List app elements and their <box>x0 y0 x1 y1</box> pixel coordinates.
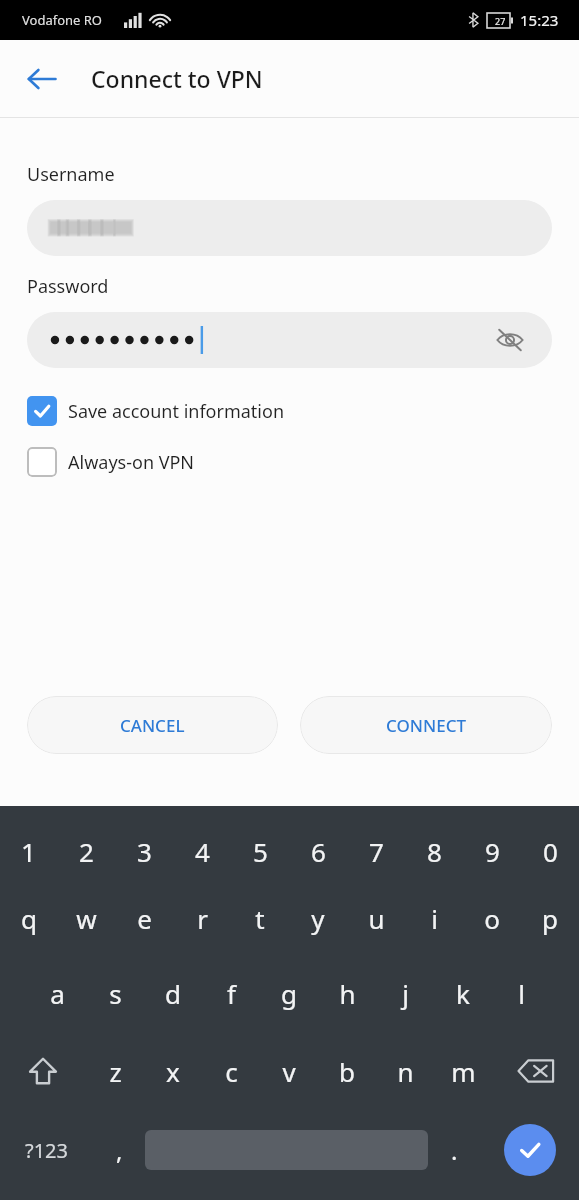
staticText: o <box>484 901 500 936</box>
button[interactable]: p <box>521 882 579 954</box>
button[interactable]: l <box>492 954 550 1032</box>
staticText: 9 <box>485 834 500 869</box>
button[interactable]: r <box>173 882 231 954</box>
button[interactable]: n <box>376 1032 434 1110</box>
staticText: c <box>225 1054 238 1089</box>
staticText: a <box>50 976 65 1011</box>
staticText: f <box>227 976 236 1011</box>
button[interactable]: o <box>463 882 521 954</box>
staticText: 15:23 <box>520 10 559 30</box>
button[interactable]: c <box>202 1032 260 1110</box>
staticText: z <box>109 1054 122 1089</box>
button[interactable]: 3 <box>115 820 173 882</box>
button[interactable]: i <box>405 882 463 954</box>
staticText: CONNECT <box>386 714 466 737</box>
staticText: 27 <box>495 15 506 27</box>
staticText: 4 <box>195 834 210 869</box>
button[interactable]: 7 <box>347 820 405 882</box>
button[interactable]: CANCEL <box>27 696 278 754</box>
staticText: 1 <box>21 834 36 869</box>
staticText: w <box>76 901 97 936</box>
button[interactable]: q <box>0 882 57 954</box>
button[interactable]: 0 <box>521 820 579 882</box>
button[interactable]: Show password <box>488 318 532 362</box>
button[interactable]: g <box>260 954 318 1032</box>
button[interactable]: Enter <box>504 1124 556 1176</box>
button[interactable]: h <box>318 954 376 1032</box>
staticText: i <box>431 901 438 936</box>
button[interactable]: 5 <box>231 820 289 882</box>
button[interactable]: CONNECT <box>300 696 552 754</box>
button[interactable] <box>27 200 552 256</box>
button[interactable]: 8 <box>405 820 463 882</box>
staticText: x <box>166 1054 180 1089</box>
button[interactable]: v <box>260 1032 318 1110</box>
button[interactable]: k <box>434 954 492 1032</box>
staticText: 5 <box>253 834 268 869</box>
button[interactable]: Always-on VPN <box>27 441 552 483</box>
button[interactable]: m <box>434 1032 492 1110</box>
staticText: 0 <box>543 834 558 869</box>
button[interactable]: j <box>376 954 434 1032</box>
staticText: s <box>109 976 122 1011</box>
button[interactable]: s <box>86 954 144 1032</box>
button[interactable]: x <box>144 1032 202 1110</box>
staticText: n <box>397 1054 414 1089</box>
button[interactable]: b <box>318 1032 376 1110</box>
staticText: Save account information <box>68 399 285 424</box>
staticText: k <box>456 976 470 1011</box>
button[interactable]: t <box>231 882 289 954</box>
staticText: p <box>542 901 558 936</box>
button[interactable]: a <box>28 954 86 1032</box>
staticText: b <box>339 1054 355 1089</box>
staticText: Connect to VPN <box>91 63 263 94</box>
staticText: Always-on VPN <box>68 450 195 475</box>
button[interactable]: Save account information <box>27 390 552 432</box>
button[interactable]: 4 <box>173 820 231 882</box>
button[interactable]: w <box>57 882 115 954</box>
staticText: 7 <box>369 834 384 869</box>
staticText: t <box>255 901 265 936</box>
button[interactable]: ?123 <box>0 1110 93 1190</box>
button[interactable]: f <box>202 954 260 1032</box>
staticText: l <box>518 976 525 1011</box>
staticText: Username <box>27 162 115 187</box>
button[interactable]: 6 <box>289 820 347 882</box>
staticText: 6 <box>311 834 326 869</box>
staticText: e <box>137 901 152 936</box>
staticText: u <box>368 901 385 936</box>
button[interactable]: u <box>347 882 405 954</box>
staticText: CANCEL <box>120 714 185 737</box>
staticText: Password <box>27 274 109 299</box>
button[interactable]: 2 <box>57 820 115 882</box>
staticText: g <box>281 976 297 1011</box>
button[interactable]: Shift <box>0 1032 86 1110</box>
button[interactable]: 9 <box>463 820 521 882</box>
staticText: y <box>311 901 325 936</box>
staticText: j <box>402 976 409 1011</box>
staticText: d <box>165 976 181 1011</box>
button[interactable]: Back <box>18 55 66 103</box>
button[interactable]: . <box>428 1110 480 1190</box>
button[interactable]: 1 <box>0 820 57 882</box>
staticText: Vodafone RO <box>22 11 103 29</box>
button[interactable]: y <box>289 882 347 954</box>
button[interactable]: z <box>86 1032 144 1110</box>
staticText: 2 <box>79 834 94 869</box>
button[interactable]: Backspace <box>492 1032 579 1110</box>
button[interactable]: d <box>144 954 202 1032</box>
staticText: ?123 <box>25 1137 68 1164</box>
staticText: h <box>339 976 356 1011</box>
button[interactable]: e <box>115 882 173 954</box>
button[interactable]: , <box>93 1110 145 1190</box>
staticText: m <box>451 1054 476 1089</box>
staticText: , <box>116 1134 123 1167</box>
staticText: q <box>21 901 37 936</box>
staticText: v <box>282 1054 296 1089</box>
staticText: . <box>451 1134 458 1167</box>
staticText: 3 <box>137 834 152 869</box>
staticText: 8 <box>427 834 442 869</box>
staticText: r <box>197 901 208 936</box>
button[interactable]: Show password <box>27 312 552 368</box>
